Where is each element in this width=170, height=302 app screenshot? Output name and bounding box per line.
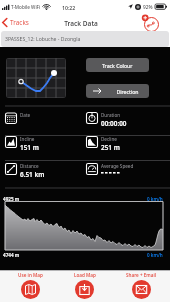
button[interactable]: Load Map [62,272,107,299]
staticText: Date [20,112,31,118]
staticText: 00:00:00 [101,119,127,128]
staticText: Use in Map [18,272,43,278]
staticText: Incline [20,136,35,142]
button[interactable]: Duration [86,112,127,128]
staticText: 6.51 km [20,170,45,179]
staticText: Track Colour [102,62,133,69]
staticText: Load Map [74,272,96,278]
button[interactable]: Incline [5,136,39,152]
staticText: Tracks [10,18,29,27]
staticText: Track Data [0,19,166,28]
staticText: 92% [143,4,153,11]
staticText: 10:22 [62,4,76,11]
button[interactable]: Track Colour [86,58,149,72]
button[interactable]: Share + Email [116,272,166,299]
staticText: Duration [101,112,121,118]
staticText: Average Speed [101,163,134,169]
button[interactable]: Average Speed [86,163,134,175]
staticText: 3PASSES_12: Lobuche - Dzongla [5,36,81,43]
staticText: 151 m [20,143,39,152]
button[interactable]: Use in Map [8,272,53,299]
button[interactable]: 3PASSES_12: Lobuche - Dzongla [1,31,169,47]
staticText: 4925 m [3,196,20,202]
staticText: Distance [20,163,39,169]
button[interactable]: Date [5,112,31,124]
staticText: Direction [96,88,149,95]
button[interactable]: Direction [86,84,149,98]
staticText: 4744 m [3,252,20,258]
staticText: 0 km/h [147,252,163,258]
staticText: T-Mobile WiFi [11,4,41,10]
button[interactable]: Distance [5,163,45,179]
staticText: Share + Email [126,272,157,278]
staticText: 251 m [101,143,120,152]
staticText: Decline [101,136,117,142]
button[interactable] [140,14,162,31]
button[interactable]: Decline [86,136,120,152]
staticText: 0 km/h [147,196,163,202]
button[interactable]: Tracks [2,14,29,31]
